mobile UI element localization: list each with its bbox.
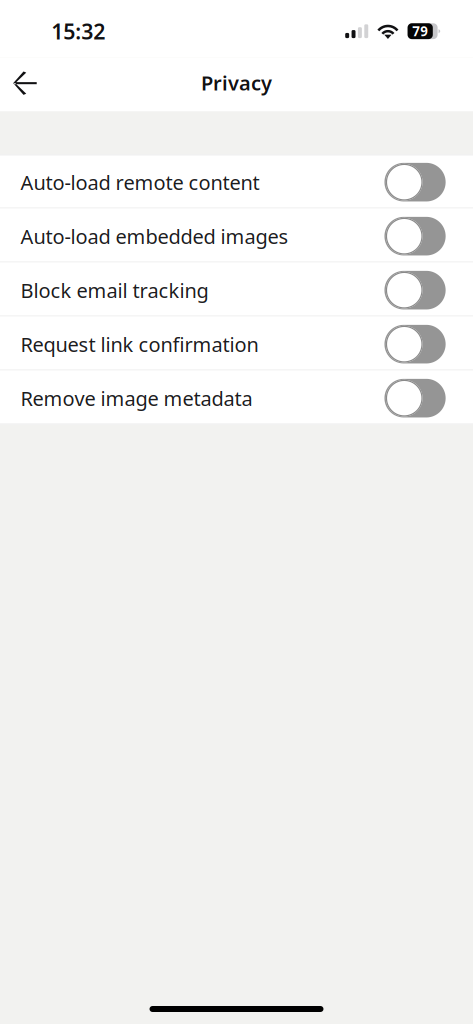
staticText: 15:32	[51, 17, 105, 45]
button[interactable]: Back	[3, 59, 47, 110]
staticText: Request link confirmation	[20, 331, 258, 357]
staticText: Auto-load embedded images	[20, 223, 288, 249]
button[interactable]: Remove image metadata	[0, 370, 473, 424]
button[interactable]: Auto-load embedded images	[0, 208, 473, 262]
button[interactable]: Auto-load remote content	[0, 154, 473, 208]
staticText: Privacy	[201, 69, 272, 96]
staticText: Remove image metadata	[20, 385, 252, 411]
button[interactable]: Block email tracking	[0, 262, 473, 316]
staticText: Auto-load remote content	[20, 169, 259, 195]
staticText: Block email tracking	[20, 277, 208, 303]
staticText: 79	[412, 22, 428, 40]
button[interactable]: Request link confirmation	[0, 316, 473, 370]
